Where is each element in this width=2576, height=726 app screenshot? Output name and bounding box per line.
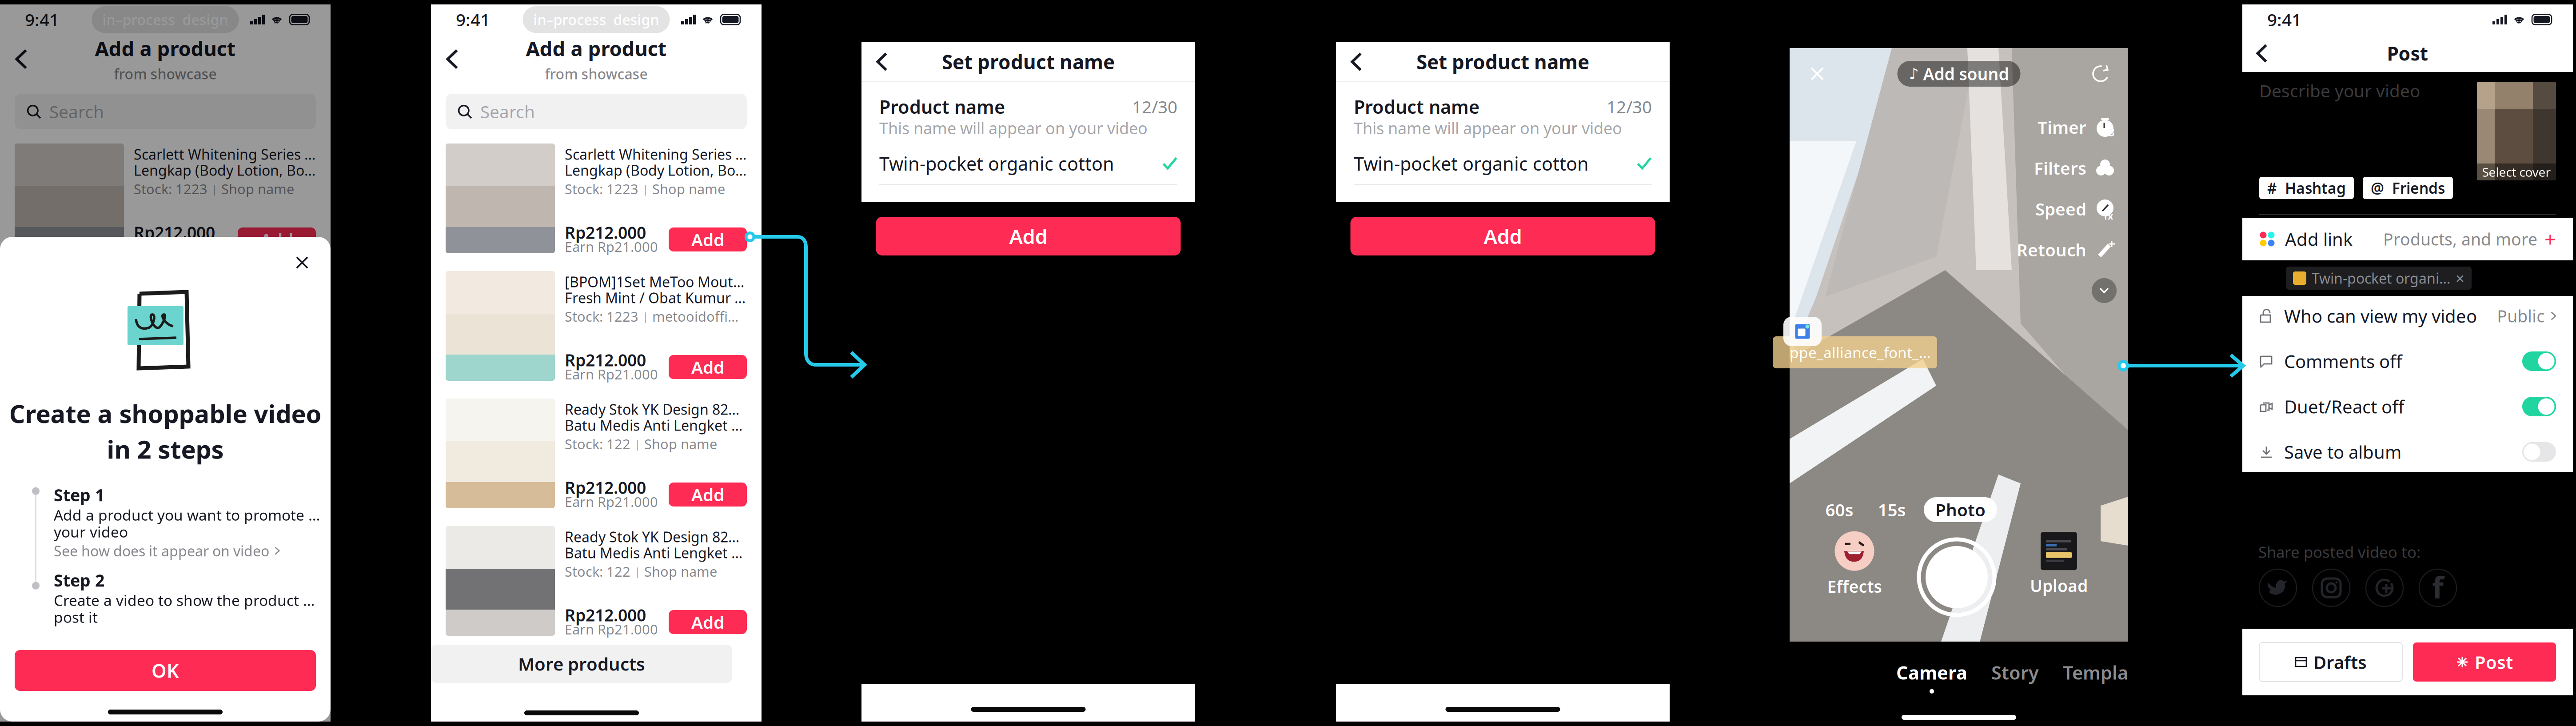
staticText: ♪ xyxy=(1909,65,1919,82)
staticText: Add xyxy=(1009,223,1047,250)
staticText: Batu Medis Anti Lengket Ukuran… xyxy=(134,543,316,562)
button[interactable]: Templa xyxy=(2063,660,2128,694)
button[interactable]: Save to album xyxy=(2242,429,2573,475)
button[interactable]: Close xyxy=(284,246,320,279)
staticText: Speed xyxy=(2035,197,2086,220)
button[interactable]: Add xyxy=(876,217,1181,255)
staticText: | xyxy=(203,437,209,451)
button[interactable]: More tools xyxy=(2092,278,2117,303)
staticText: from showcase xyxy=(545,64,648,83)
staticText: Rp212.000 xyxy=(134,221,215,243)
button[interactable]: Share xyxy=(2418,568,2457,607)
button[interactable]: ♪ xyxy=(1897,61,2020,87)
button[interactable]: Share xyxy=(2312,568,2351,607)
button[interactable]: Timer xyxy=(2038,115,2117,140)
button[interactable]: Add xyxy=(669,483,747,507)
staticText: Batu Medis Anti Lengket Ukuran… xyxy=(565,416,747,435)
button[interactable]: Filters xyxy=(2034,156,2117,180)
staticText: Add sound xyxy=(1923,63,2009,85)
button[interactable]: Who can view my video xyxy=(2242,293,2573,339)
button[interactable]: Retouch xyxy=(2017,237,2117,262)
button[interactable]: Flip camera xyxy=(2085,58,2117,90)
button[interactable]: Add link xyxy=(2242,218,2573,260)
staticText: Batu Medis Anti Lengket Ukuran… xyxy=(134,416,316,435)
button[interactable]: Upload xyxy=(2030,532,2088,597)
staticText: from showcase xyxy=(114,64,217,83)
button[interactable]: Photo xyxy=(1924,497,1997,522)
button[interactable]: @ Friends xyxy=(2363,177,2453,199)
staticText: See how does it appear on video xyxy=(54,541,269,560)
button[interactable]: Duet/React off xyxy=(2242,384,2573,429)
staticText: Scarlett Whitening Series Paket xyxy=(565,145,747,164)
button[interactable]: Drafts xyxy=(2259,642,2402,682)
button[interactable]: Close xyxy=(1801,58,1833,90)
button[interactable]: # Hashtag xyxy=(2259,177,2354,199)
button[interactable]: Add xyxy=(238,227,316,251)
staticText: Ready Stok YK Design 822 Wajan xyxy=(565,527,747,546)
staticText: Search xyxy=(49,100,104,123)
staticText: Create a video to show the product and xyxy=(54,590,320,610)
button[interactable]: Post xyxy=(2413,642,2556,682)
staticText: Timer xyxy=(2038,116,2086,138)
button[interactable]: More products xyxy=(0,645,301,683)
staticText: 9:41 xyxy=(456,8,490,31)
staticText: Fresh Mint / Obat Kumur Probio… xyxy=(565,288,747,307)
staticText: Comments off xyxy=(2284,349,2402,373)
button[interactable]: Add xyxy=(669,227,747,251)
button[interactable]: Select cover xyxy=(2477,82,2556,180)
button[interactable]: Share xyxy=(2258,568,2297,607)
staticText: Stock: 1223 xyxy=(565,180,638,198)
button[interactable]: Story xyxy=(1991,660,2039,694)
staticText: Earn Rp21.000 xyxy=(565,238,658,256)
button[interactable]: Capture xyxy=(1919,539,1994,615)
staticText: Twin-pocket organic cotton xyxy=(1354,151,1589,176)
button[interactable]: Back xyxy=(861,43,902,81)
staticText: | xyxy=(642,309,648,323)
staticText: Stock: 122 xyxy=(134,435,199,453)
staticText: Add a product xyxy=(526,35,667,62)
staticText: Add xyxy=(691,228,724,251)
staticText: Lengkap (Body Lotion, Body Sc … xyxy=(134,161,316,180)
button[interactable]: Back xyxy=(0,39,43,80)
staticText: Add xyxy=(691,483,724,506)
button[interactable]: Add xyxy=(1350,217,1655,255)
button[interactable]: Back xyxy=(1336,43,1377,81)
staticText: f xyxy=(2432,567,2444,607)
button[interactable]: Add xyxy=(669,610,747,634)
button[interactable]: Add xyxy=(669,355,747,379)
staticText: Scarlett Whitening Series Paket xyxy=(134,145,316,164)
staticText: Select cover xyxy=(2482,164,2551,180)
button[interactable]: Comments off xyxy=(2242,339,2573,384)
button[interactable]: Back xyxy=(2242,35,2281,72)
button[interactable]: Speed xyxy=(2035,196,2117,221)
staticText: Shop name xyxy=(644,562,717,580)
button[interactable]: OK xyxy=(15,650,316,691)
staticText: This name will appear on your video xyxy=(879,117,1148,139)
staticText: Camera xyxy=(1896,660,1967,685)
button[interactable]: Effects xyxy=(1827,531,1882,597)
staticText: Set product name xyxy=(942,49,1115,75)
button[interactable]: Camera xyxy=(1896,660,1967,694)
staticText: Add xyxy=(1484,223,1522,250)
button[interactable]: Share xyxy=(2365,568,2404,607)
staticText: Products, and more xyxy=(2383,228,2537,250)
button[interactable]: See how does it appear on video xyxy=(54,540,320,561)
staticText: Stock: 1223 xyxy=(565,307,638,325)
button[interactable]: 15s xyxy=(1871,497,1912,522)
staticText: This name will appear on your video xyxy=(1354,117,1622,139)
button[interactable]: Back xyxy=(431,39,474,80)
staticText: Retouch xyxy=(2017,238,2086,261)
button[interactable]: 60s xyxy=(1819,497,1860,522)
button[interactable]: More products xyxy=(431,645,732,683)
staticText: in–process design xyxy=(102,10,228,29)
